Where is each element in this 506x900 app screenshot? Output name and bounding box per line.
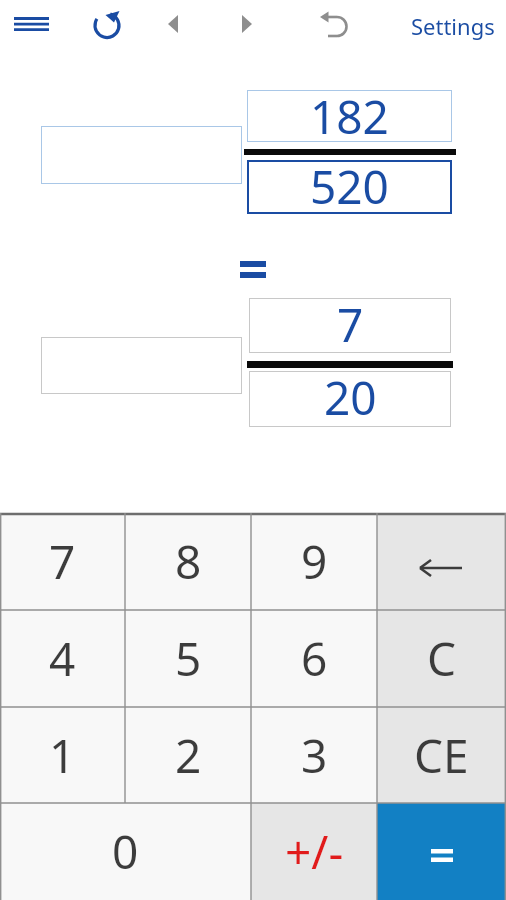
button[interactable]: 0 xyxy=(0,803,251,900)
button[interactable]: 1 xyxy=(0,707,125,803)
button[interactable]: 2 xyxy=(125,707,251,803)
button[interactable]: 182 xyxy=(247,90,452,142)
button[interactable]: 20 xyxy=(249,371,451,427)
button[interactable]: 9 xyxy=(251,513,377,610)
staticText: 0 xyxy=(112,820,139,883)
button[interactable]: Settings xyxy=(400,8,506,44)
button[interactable]: 5 xyxy=(125,610,251,707)
button[interactable] xyxy=(41,126,242,184)
button[interactable] xyxy=(314,6,354,44)
button[interactable] xyxy=(377,513,506,610)
staticText: 6 xyxy=(301,627,328,690)
staticText: 8 xyxy=(175,530,202,593)
staticText: 4 xyxy=(49,627,76,690)
button[interactable]: +/- xyxy=(251,803,377,900)
staticText: CE xyxy=(414,724,469,787)
button[interactable]: 4 xyxy=(0,610,125,707)
staticText: Settings xyxy=(411,11,495,41)
staticText: 182 xyxy=(310,85,389,137)
button[interactable]: CE xyxy=(377,707,506,803)
staticText: 520 xyxy=(310,155,389,209)
staticText: 7 xyxy=(337,293,364,348)
staticText: +/- xyxy=(285,820,344,883)
button[interactable]: 6 xyxy=(251,610,377,707)
button[interactable] xyxy=(158,8,190,42)
staticText: 7 xyxy=(49,530,76,593)
button[interactable]: 7 xyxy=(0,513,125,610)
button[interactable]: 520 xyxy=(247,160,452,214)
button[interactable]: 3 xyxy=(251,707,377,803)
staticText: C xyxy=(427,627,457,690)
button[interactable] xyxy=(90,8,126,42)
staticText: 1 xyxy=(49,724,76,787)
button[interactable]: C xyxy=(377,610,506,707)
staticText: 20 xyxy=(324,366,377,422)
staticText: 9 xyxy=(301,530,328,593)
staticText: 3 xyxy=(301,724,328,787)
button[interactable] xyxy=(377,803,506,900)
button[interactable] xyxy=(230,8,262,42)
button[interactable]: 7 xyxy=(249,298,451,353)
button[interactable]: 8 xyxy=(125,513,251,610)
button[interactable] xyxy=(8,8,56,42)
staticText: 2 xyxy=(175,724,202,787)
button[interactable] xyxy=(41,337,242,394)
staticText: 5 xyxy=(175,627,202,690)
